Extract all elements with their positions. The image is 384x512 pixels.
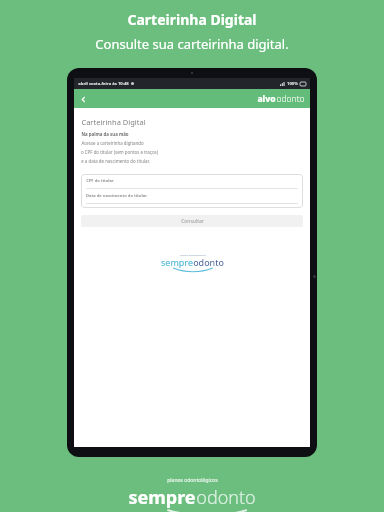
button[interactable]: Data de nascimento do titular: [86, 193, 298, 204]
staticText: Carteirinha Digital: [81, 117, 146, 127]
button[interactable]: Consultar: [81, 215, 303, 227]
staticText: Carteirinha Digital: [127, 10, 257, 29]
staticText: Consulte sua carteirinha digital.: [95, 35, 289, 53]
staticText: sempre: [161, 256, 193, 268]
button[interactable]: CPF do titular: [86, 178, 298, 189]
staticText: o CPF do titular (sem pontos e traços): [81, 149, 158, 155]
staticText: CPF do titular: [86, 178, 114, 184]
staticText: odonto: [276, 93, 305, 105]
button[interactable]: Voltar: [76, 92, 90, 106]
staticText: 100%: [287, 81, 298, 87]
staticText: e a data de nascimento do titular.: [81, 158, 150, 164]
staticText: Acesse a carteirinha digitando: [81, 140, 144, 146]
staticText: odonto: [196, 485, 256, 510]
staticText: odonto: [193, 256, 224, 268]
staticText: alvo: [257, 93, 276, 105]
staticText: planos odontológicos: [167, 477, 218, 484]
staticText: sempre: [128, 485, 196, 510]
staticText: abril sexta-feira às 10:48: [78, 81, 129, 87]
staticText: Na palma da sua mão: [81, 131, 129, 137]
staticText: Consultar: [181, 218, 204, 225]
button[interactable]: Alvo Odonto: [257, 93, 305, 105]
staticText: planos odontológicos: [180, 253, 206, 256]
staticText: Data de nascimento do titular: [86, 193, 147, 199]
